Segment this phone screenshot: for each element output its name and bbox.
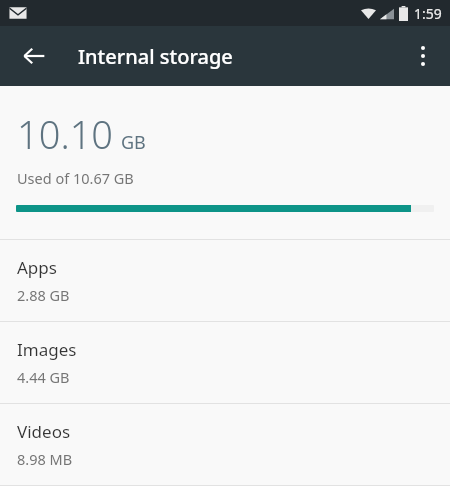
staticText: Images — [17, 338, 77, 361]
staticText: Used of 10.67 GB — [17, 168, 134, 188]
staticText: 4.44 GB — [17, 367, 70, 387]
staticText: 1:59 — [414, 4, 442, 23]
staticText: Videos — [17, 420, 71, 443]
staticText: Internal storage — [78, 43, 233, 70]
staticText: 10.10 — [17, 108, 114, 160]
staticText: GB — [121, 130, 146, 155]
staticText: 8.98 MB — [17, 449, 73, 469]
button[interactable]: Videos — [0, 404, 450, 485]
staticText: 2.88 GB — [17, 285, 70, 305]
button[interactable]: Back — [10, 32, 58, 80]
button[interactable]: Images — [0, 322, 450, 403]
button[interactable]: More options — [401, 34, 445, 78]
staticText: Apps — [17, 256, 57, 279]
button[interactable]: Apps — [0, 240, 450, 321]
